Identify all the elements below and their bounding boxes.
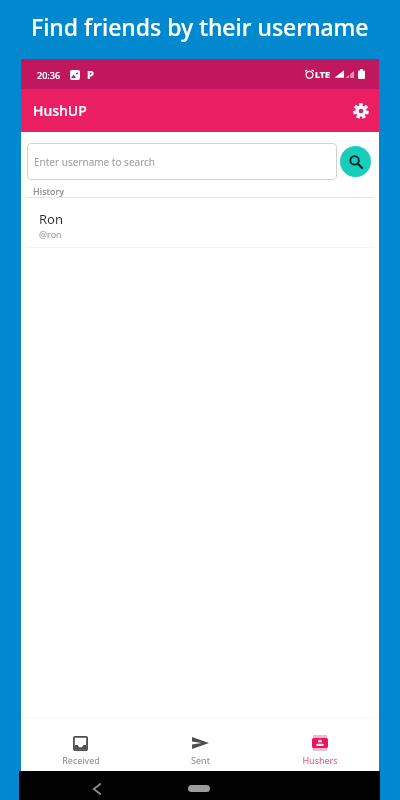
button[interactable]: Sent — [141, 718, 260, 771]
staticText: Hushers — [302, 754, 338, 766]
staticText: Sent — [191, 754, 210, 766]
staticText: Enter username to search — [34, 155, 156, 169]
button[interactable]: Search — [340, 146, 371, 177]
button[interactable]: Ron — [21, 198, 379, 247]
staticText: P — [87, 67, 94, 82]
staticText: Received — [62, 754, 100, 766]
staticText: HushUP — [33, 101, 87, 120]
staticText: @ron — [39, 228, 62, 240]
staticText: History — [33, 185, 65, 197]
button[interactable]: Received — [21, 718, 140, 771]
staticText: Find friends by their username — [31, 11, 369, 42]
button[interactable]: Enter username to search — [27, 143, 337, 180]
button[interactable]: Settings — [345, 95, 377, 127]
staticText: 20:36 — [37, 69, 61, 81]
staticText: LTE — [315, 68, 331, 80]
staticText: Ron — [39, 210, 63, 228]
button[interactable]: Hushers — [260, 718, 379, 771]
